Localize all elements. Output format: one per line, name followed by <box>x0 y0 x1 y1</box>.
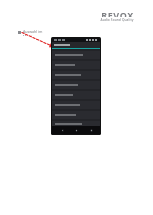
staticText: Auswahl im Menü <box>23 29 50 36</box>
staticText: REVOX <box>101 9 134 17</box>
button[interactable] <box>52 121 100 126</box>
button[interactable] <box>52 51 100 61</box>
button[interactable] <box>52 61 100 71</box>
button[interactable]: Recents <box>86 126 96 134</box>
button[interactable] <box>52 71 100 81</box>
staticText: Audio Sound Quality <box>100 18 134 22</box>
button[interactable] <box>52 81 100 91</box>
button[interactable] <box>52 42 100 49</box>
button[interactable]: Home <box>71 126 81 134</box>
button[interactable]: Back <box>57 126 67 134</box>
button[interactable] <box>52 111 100 121</box>
button[interactable] <box>52 91 100 101</box>
button[interactable] <box>52 101 100 111</box>
button[interactable]: Auswahl im Menü <box>18 29 50 36</box>
